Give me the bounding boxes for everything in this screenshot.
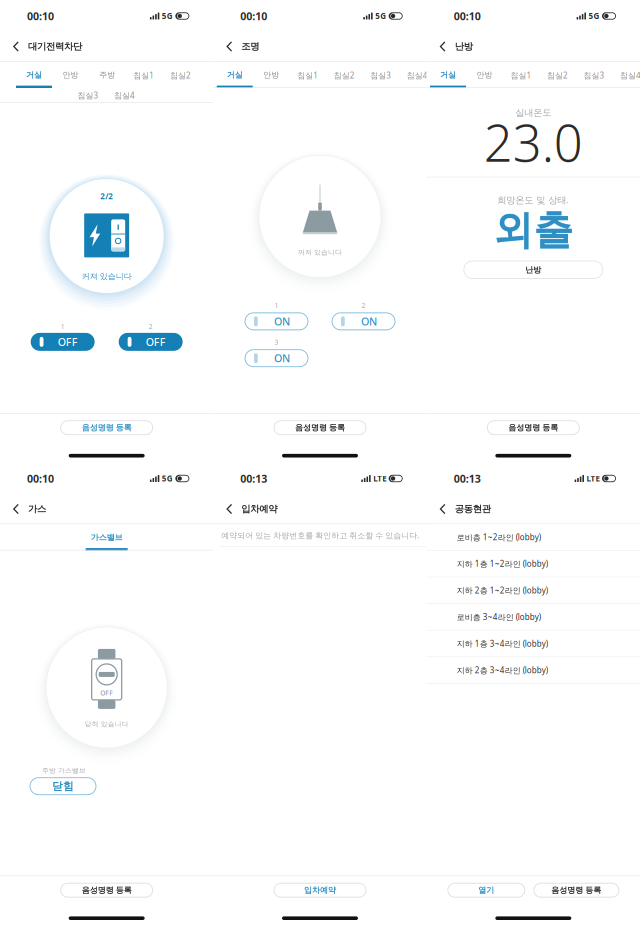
staticText: 난방 [525,265,541,275]
button[interactable]: 열기 [448,883,525,897]
staticText: 주방 가스밸브 [42,766,86,775]
button[interactable]: 침실2 [326,61,362,88]
staticText: 난방 [455,41,473,52]
staticText: 00:13 [454,471,481,486]
staticText: 입차예약 [304,885,336,895]
button[interactable]: 입차예약 [274,883,366,897]
staticText: 23.0 [484,108,583,176]
button[interactable]: 지하 1층 1~2라인 (lobby) [427,551,640,577]
button[interactable]: 음성명령 등록 [61,421,153,435]
staticText: LTE [586,473,599,484]
button[interactable]: 음성명령 등록 [61,883,153,897]
staticText: 침실1 [297,70,318,81]
button[interactable]: 침실2 [162,61,198,88]
button[interactable]: 거실 [16,61,52,88]
staticText: 5G [162,11,173,21]
staticText: 음성명령 등록 [551,885,601,895]
button[interactable]: 음성명령 등록 [487,421,579,435]
button[interactable]: 침실1 [126,61,162,88]
staticText: 열기 [478,885,494,895]
staticText: 00:10 [27,471,54,486]
button[interactable]: 음성명령 등록 [534,883,619,897]
staticText: 침실2 [334,70,355,81]
button[interactable]: 뒤로 [8,498,24,520]
staticText: 침실3 [77,90,98,101]
button[interactable]: 침실3 [70,88,106,103]
staticText: 침실1 [511,70,532,81]
button[interactable]: 가스밸브 [86,523,128,550]
staticText: 침실1 [133,70,154,81]
staticText: OFF [146,335,166,349]
staticText: LTE [373,473,386,484]
button[interactable]: 로비층 3~4라인 (lobby) [427,604,640,631]
button[interactable]: 뒤로 [221,35,237,58]
button[interactable]: 뒤로 [435,498,451,520]
staticText: 5G [375,11,386,21]
staticText: 꺼져 있습니다 [298,248,342,256]
button[interactable]: 지하 1층 3~4라인 (lobby) [427,631,640,657]
button[interactable]: 침실4 [107,88,143,103]
staticText: 예약되어 있는 차량번호를 확인하고 취소할 수 있습니다. [221,530,419,540]
button[interactable]: 뒤로 [8,35,24,58]
staticText: ON [361,314,377,328]
staticText: 00:10 [27,9,54,23]
button[interactable]: 침실2 [540,61,576,88]
button[interactable]: 안방 [53,61,89,88]
staticText: 1 [274,301,278,310]
staticText: 닫힘 [52,780,74,793]
button[interactable]: 침실1 [503,61,539,88]
button[interactable]: 침실4 [399,61,435,88]
staticText: ON [274,351,290,365]
staticText: 5G [588,11,599,21]
button[interactable]: 침실4 [613,61,640,88]
staticText: 안방 [477,70,493,80]
button[interactable]: 지하 2층 3~4라인 (lobby) [427,657,640,684]
button[interactable]: ON [245,350,308,367]
button[interactable]: 로비층 1~2라인 (lobby) [427,524,640,551]
button[interactable]: 음성명령 등록 [274,421,366,435]
staticText: 거실 [440,70,456,80]
staticText: 3 [274,338,278,347]
button[interactable]: 안방 [467,61,503,88]
button[interactable]: 안방 [253,61,289,88]
staticText: 지하 1층 1~2라인 (lobby) [457,558,548,569]
staticText: 음성명령 등록 [295,423,345,433]
staticText: 거실 [26,70,42,80]
staticText: 대기전력차단 [28,41,82,52]
staticText: 로비층 3~4라인 (lobby) [457,612,541,622]
staticText: 지하 2층 1~2라인 (lobby) [457,585,548,596]
staticText: OFF [100,689,113,697]
staticText: 로비층 1~2라인 (lobby) [457,532,541,542]
button[interactable]: ON [245,313,308,330]
staticText: 지하 1층 3~4라인 (lobby) [457,638,548,649]
button[interactable]: ON [332,313,395,330]
staticText: 닫혀 있습니다 [85,720,129,728]
staticText: 침실4 [114,90,135,101]
staticText: 침실2 [170,70,191,81]
staticText: 커져 있습니다 [82,271,132,281]
button[interactable]: OFF [31,333,95,351]
staticText: 침실3 [584,70,605,81]
staticText: 주방 [99,70,115,80]
staticText: 거실 [227,70,243,80]
button[interactable]: 닫힘 [30,778,96,795]
button[interactable]: 주방 [89,61,125,88]
staticText: 2 [361,301,365,310]
button[interactable]: 난방 [464,261,603,278]
button[interactable]: 뒤로 [435,35,451,58]
staticText: 00:10 [240,9,267,23]
button[interactable]: 거실 [217,61,253,88]
staticText: 안방 [63,70,79,80]
button[interactable]: 지하 2층 1~2라인 (lobby) [427,577,640,604]
button[interactable]: 침실3 [576,61,612,88]
button[interactable]: OFF [119,333,183,351]
button[interactable]: 침실1 [290,61,326,88]
button[interactable]: 거실 [430,61,466,88]
staticText: 가스 [28,503,46,515]
staticText: 안방 [263,70,279,80]
button[interactable]: 침실3 [363,61,399,88]
staticText: 00:13 [240,471,267,486]
staticText: 침실2 [547,70,568,81]
staticText: 공동현관 [455,503,491,515]
button[interactable]: 뒤로 [221,498,237,520]
